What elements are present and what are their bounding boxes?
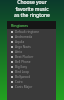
button[interactable]: Ringtones [7,21,56,29]
button[interactable]: Canis Major [7,84,56,89]
staticText: Bollywood [15,75,31,79]
staticText: Choose your favorite music as the ringto… [14,0,50,18]
staticText: Bird Loop [15,70,29,74]
staticText: Cairo [15,80,23,84]
staticText: Bell Phone [15,60,31,64]
button[interactable]: Bird Loop [7,69,56,74]
staticText: Beat Plucker [15,55,34,59]
staticText: Canis Major [15,85,33,89]
button[interactable]: Aquila [7,39,56,44]
staticText: Ringtones [11,23,29,28]
button[interactable]: Default ringtone [7,29,56,34]
button[interactable]: Bollywood [7,74,56,79]
button[interactable]: Big Easy [7,64,56,69]
staticText: Aquila [15,40,25,44]
button[interactable]: Bell Phone [7,59,56,64]
staticText: Default ringtone [15,30,39,34]
button[interactable]: Andromeda [7,34,56,39]
button[interactable]: Atria [7,49,56,54]
staticText: Atria [15,50,22,54]
staticText: Argo Navis [15,45,31,49]
button[interactable]: Argo Navis [7,44,56,49]
staticText: Big Easy [15,65,28,69]
button[interactable]: Beat Plucker [7,54,56,59]
staticText: Andromeda [15,35,33,39]
button[interactable]: Cairo [7,79,56,84]
